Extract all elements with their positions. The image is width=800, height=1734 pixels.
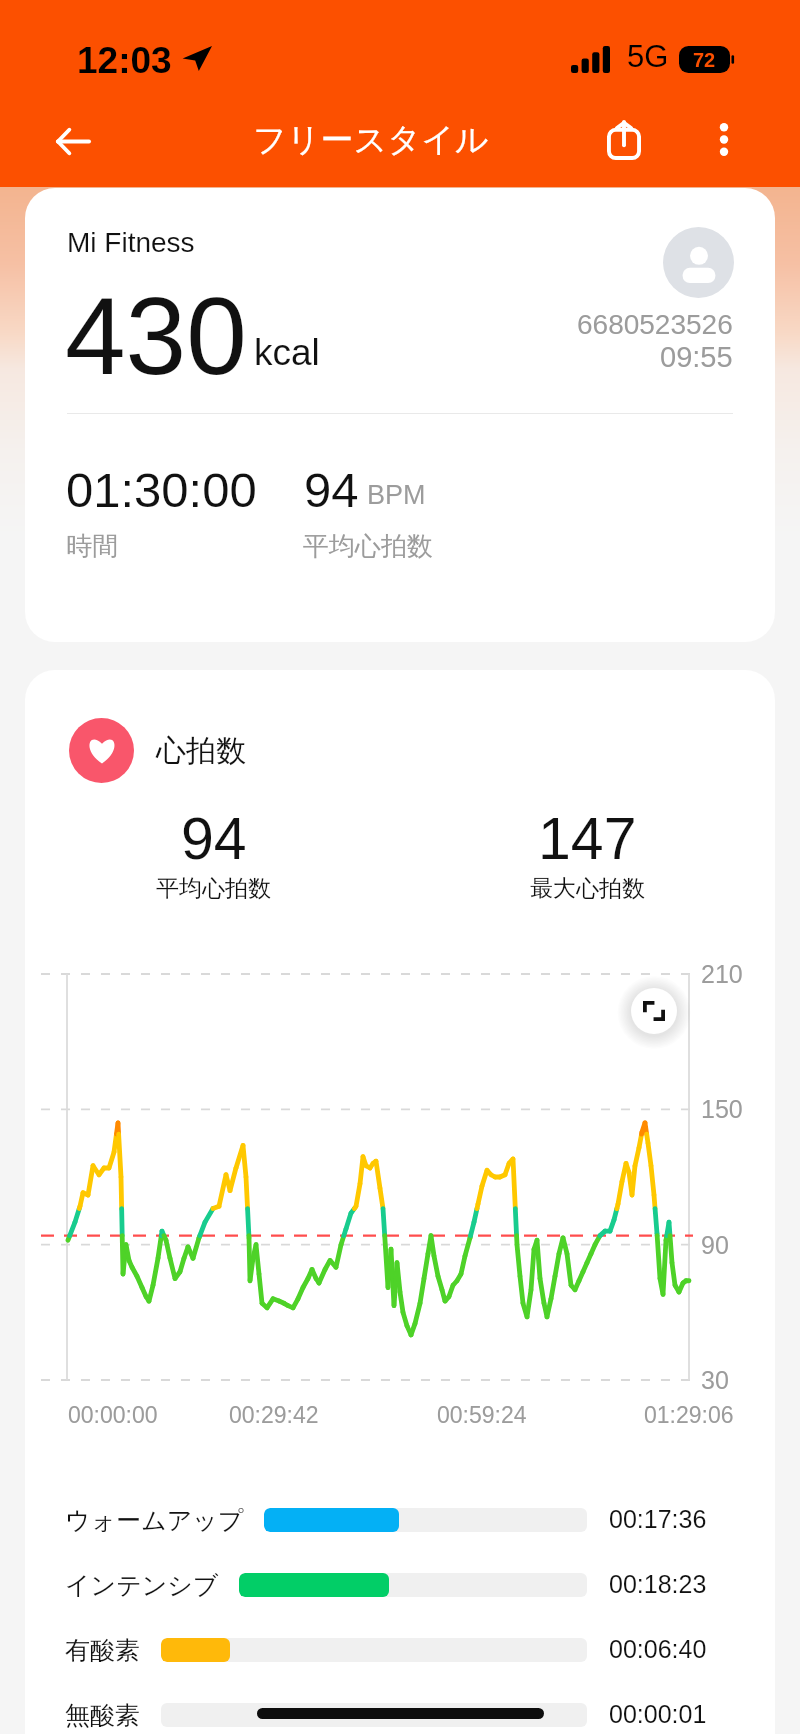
staticText: 00:59:24 xyxy=(437,1402,527,1428)
staticText: 有酸素 xyxy=(65,1635,140,1666)
staticText: 09:55 xyxy=(660,341,733,373)
staticText: 6680523526 xyxy=(577,309,733,340)
staticText: 00:06:40 xyxy=(609,1635,707,1663)
staticText: 94 xyxy=(304,463,359,518)
staticText: 94 xyxy=(181,806,247,872)
button[interactable]: Expand chart xyxy=(631,988,677,1034)
button[interactable]: Share xyxy=(591,107,657,173)
staticText: 01:29:06 xyxy=(644,1402,734,1428)
staticText: フリースタイル xyxy=(253,119,489,161)
staticText: 147 xyxy=(538,806,637,872)
staticText: 平均心拍数 xyxy=(156,874,271,903)
staticText: 00:18:23 xyxy=(609,1570,707,1598)
staticText: 90 xyxy=(701,1231,729,1259)
staticText: 平均心拍数 xyxy=(303,530,433,563)
staticText: 430 xyxy=(65,275,247,397)
staticText: 00:00:00 xyxy=(68,1402,158,1428)
staticText: インテンシブ xyxy=(65,1570,219,1601)
staticText: kcal xyxy=(254,332,320,373)
staticText: 時間 xyxy=(66,530,118,563)
staticText: 12:03 xyxy=(77,40,172,81)
staticText: 最大心拍数 xyxy=(530,874,645,903)
staticText: 無酸素 xyxy=(65,1700,140,1731)
staticText: ウォームアップ xyxy=(65,1505,244,1536)
staticText: 00:29:42 xyxy=(229,1402,319,1428)
staticText: 30 xyxy=(701,1366,729,1394)
staticText: BPM xyxy=(367,480,426,510)
staticText: 00:00:01 xyxy=(609,1700,707,1728)
staticText: 心拍数 xyxy=(156,732,246,770)
staticText: 00:17:36 xyxy=(609,1505,707,1533)
staticText: 210 xyxy=(701,960,743,988)
staticText: 72 xyxy=(693,49,716,71)
staticText: 150 xyxy=(701,1095,743,1123)
button[interactable]: Back xyxy=(45,113,101,169)
staticText: Mi Fitness xyxy=(67,227,195,258)
button[interactable]: More options xyxy=(693,108,755,170)
staticText: 5G xyxy=(627,39,669,74)
staticText: 01:30:00 xyxy=(66,463,257,518)
